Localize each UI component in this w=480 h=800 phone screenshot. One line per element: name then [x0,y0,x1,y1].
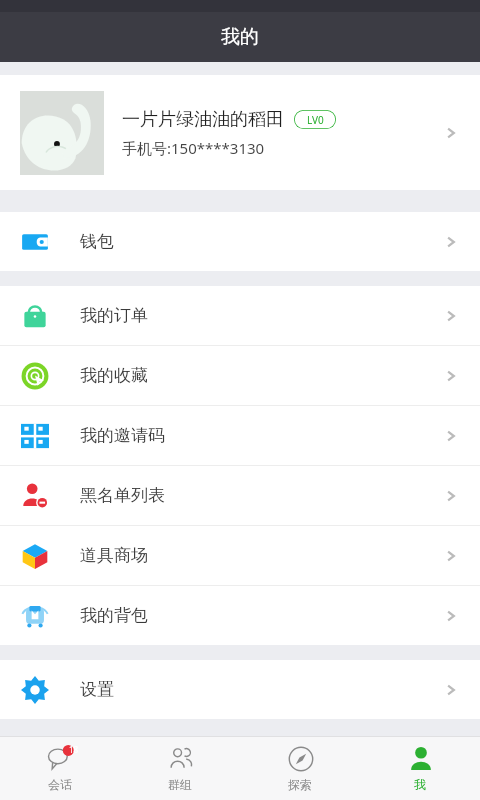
button[interactable]: 我的收藏 [0,346,480,405]
staticText: 设置 [80,679,442,700]
staticText: 我的邀请码 [80,425,442,446]
staticText: 我的 [221,25,259,49]
staticText: 钱包 [80,231,442,252]
staticText: 黑名单列表 [80,485,442,506]
staticText: 道具商场 [80,545,442,566]
button[interactable]: 钱包 [0,212,480,271]
button[interactable]: 道具商场 [0,526,480,585]
staticText: 探索 [288,777,312,792]
staticText: 一片片绿油油的稻田 [122,108,284,131]
button[interactable]: 群组 [120,737,240,800]
button[interactable]: 我 [360,737,480,800]
staticText: 我 [414,777,426,792]
button[interactable]: 18 [0,737,120,800]
button[interactable]: 我的背包 [0,586,480,645]
staticText: 我的背包 [80,605,442,626]
button[interactable]: 探索 [240,737,360,800]
button[interactable]: 一片片绿油油的稻田 [0,75,480,190]
button[interactable]: 黑名单列表 [0,466,480,525]
staticText: 手机号:150****3130 [122,138,265,158]
staticText: 我的收藏 [80,365,442,386]
staticText: 我的订单 [80,305,442,326]
button[interactable]: 我的邀请码 [0,406,480,465]
button[interactable]: 设置 [0,660,480,719]
staticText: 群组 [168,777,192,792]
staticText: LV0 [307,113,324,127]
button[interactable]: 我的订单 [0,286,480,345]
staticText: 会话 [48,777,72,792]
staticText: 18 [69,744,79,755]
